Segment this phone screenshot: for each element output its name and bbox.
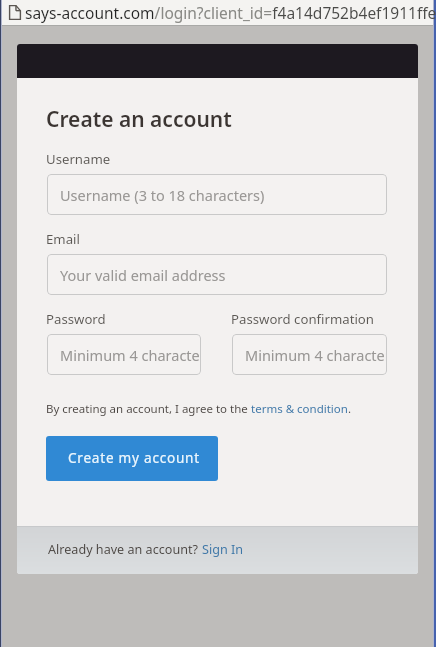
staticText: Sign In	[202, 541, 244, 558]
staticText: .	[348, 401, 352, 417]
staticText: Password confirmation	[231, 310, 374, 328]
button[interactable]: Create my account	[46, 436, 218, 481]
staticText: Minimum 4 characters	[245, 345, 387, 365]
staticText: Already have an account?	[48, 541, 202, 558]
staticText: Minimum 4 characters	[60, 345, 201, 365]
staticText: Your valid email address	[60, 265, 226, 285]
staticText: Create my account	[68, 448, 200, 467]
staticText: Email	[46, 230, 80, 248]
staticText: By creating an account, I agree to the	[46, 401, 251, 417]
other: Page info	[9, 5, 21, 20]
button[interactable]: terms & condition	[251, 401, 348, 417]
staticText: says-account.com/login?client_id=f4a14d7…	[25, 2, 436, 23]
staticText: Create an account	[46, 105, 232, 134]
staticText: terms & condition	[251, 401, 348, 417]
button[interactable]: Your valid email address	[47, 254, 387, 295]
button[interactable]: Minimum 4 characters	[47, 334, 201, 375]
staticText: Username (3 to 18 characters)	[60, 185, 265, 205]
button[interactable]: Sign In	[202, 541, 244, 558]
staticText: Password	[46, 310, 106, 328]
staticText: Username	[46, 150, 111, 168]
button[interactable]: Minimum 4 characters	[232, 334, 387, 375]
button[interactable]: Username (3 to 18 characters)	[47, 174, 387, 215]
